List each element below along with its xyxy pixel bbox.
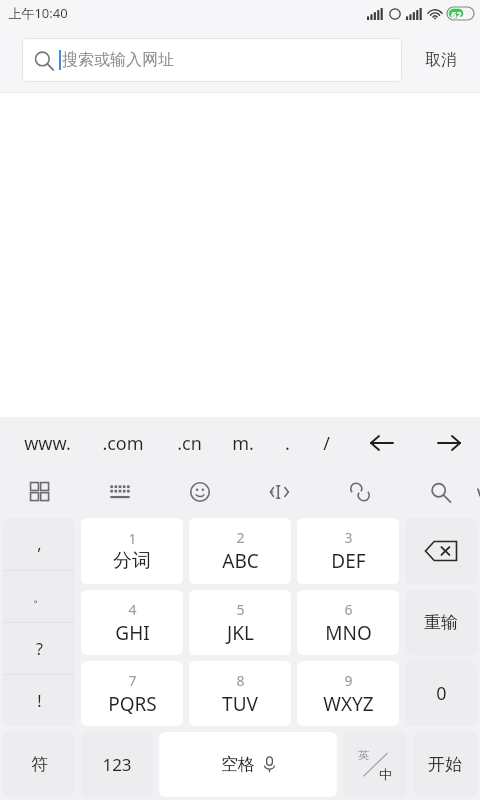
staticText: 3 bbox=[344, 528, 353, 547]
staticText: ABC bbox=[222, 548, 259, 574]
staticText: WXYZ bbox=[323, 691, 374, 717]
staticText: 4 bbox=[128, 600, 137, 619]
button[interactable]: .com bbox=[86, 417, 160, 469]
button[interactable]: 8 bbox=[189, 661, 291, 726]
staticText: 英 bbox=[358, 748, 369, 762]
button[interactable]: ? bbox=[3, 623, 75, 674]
button[interactable]: 3 bbox=[297, 518, 399, 584]
button[interactable]: 1 bbox=[81, 518, 183, 584]
staticText: DEF bbox=[331, 548, 366, 574]
staticText: m. bbox=[232, 431, 254, 456]
staticText: 0 bbox=[436, 681, 447, 706]
staticText: 。 bbox=[33, 589, 46, 605]
staticText: 62 bbox=[451, 8, 462, 20]
button[interactable]: 符 bbox=[3, 732, 75, 797]
staticText: 9 bbox=[344, 671, 353, 690]
button[interactable]: Next bbox=[418, 417, 480, 469]
staticText: 重输 bbox=[424, 612, 458, 633]
button[interactable]: Clipboard bbox=[320, 469, 400, 515]
button[interactable]: , bbox=[3, 518, 75, 570]
button[interactable]: 取消 bbox=[402, 26, 480, 93]
staticText: 上午10:40 bbox=[8, 4, 68, 22]
staticText: JKL bbox=[227, 620, 254, 646]
staticText: 分词 bbox=[113, 549, 151, 573]
staticText: GHI bbox=[115, 620, 150, 646]
staticText: 1 bbox=[128, 529, 137, 548]
button[interactable]: 搜索或输入网址 bbox=[22, 38, 402, 82]
staticText: 中 bbox=[379, 766, 392, 782]
staticText: / bbox=[323, 431, 330, 456]
button[interactable]: Panels bbox=[0, 469, 80, 515]
staticText: MNO bbox=[325, 620, 372, 646]
button[interactable]: Search bbox=[400, 469, 480, 515]
button[interactable]: 7 bbox=[81, 661, 183, 726]
staticText: 2 bbox=[236, 528, 245, 547]
button[interactable]: 9 bbox=[297, 661, 399, 726]
staticText: 开始 bbox=[428, 754, 462, 775]
button[interactable]: Backspace bbox=[405, 518, 477, 584]
button[interactable]: Previous bbox=[346, 417, 418, 469]
staticText: 5 bbox=[236, 600, 245, 619]
staticText: .com bbox=[102, 431, 144, 456]
staticText: 6 bbox=[344, 600, 353, 619]
button[interactable]: 2 bbox=[189, 518, 291, 584]
button[interactable]: Move cursor bbox=[240, 469, 320, 515]
button[interactable]: Keyboard bbox=[80, 469, 160, 515]
staticText: 7 bbox=[128, 671, 137, 690]
staticText: . bbox=[285, 431, 290, 456]
staticText: , bbox=[37, 533, 42, 555]
staticText: PQRS bbox=[108, 691, 157, 717]
button[interactable]: 4 bbox=[81, 590, 183, 655]
staticText: TUV bbox=[222, 691, 258, 717]
staticText: 123 bbox=[102, 753, 132, 776]
button[interactable]: 。 bbox=[3, 571, 75, 622]
button[interactable]: 开始 bbox=[413, 732, 477, 797]
button[interactable]: 123 bbox=[81, 732, 153, 797]
button[interactable]: m. bbox=[218, 417, 268, 469]
button[interactable]: 空格 bbox=[159, 732, 337, 797]
button[interactable]: www. bbox=[8, 417, 86, 469]
button[interactable]: .cn bbox=[160, 417, 218, 469]
button[interactable]: 6 bbox=[297, 590, 399, 655]
button[interactable]: . bbox=[268, 417, 306, 469]
staticText: www. bbox=[24, 431, 71, 456]
button[interactable]: / bbox=[306, 417, 346, 469]
staticText: 8 bbox=[236, 671, 245, 690]
button[interactable]: 重输 bbox=[405, 590, 477, 655]
staticText: ! bbox=[37, 690, 42, 712]
staticText: 搜索或输入网址 bbox=[62, 50, 174, 70]
staticText: 取消 bbox=[425, 50, 457, 70]
staticText: ? bbox=[36, 638, 43, 660]
staticText: 空格 bbox=[221, 754, 255, 775]
staticText: .cn bbox=[177, 431, 202, 456]
button[interactable]: 5 bbox=[189, 590, 291, 655]
button[interactable]: ! bbox=[3, 675, 75, 726]
staticText: 符 bbox=[31, 754, 48, 775]
button[interactable]: 英 bbox=[343, 732, 407, 797]
button[interactable]: 0 bbox=[405, 661, 477, 726]
button[interactable]: Emoji bbox=[160, 469, 240, 515]
